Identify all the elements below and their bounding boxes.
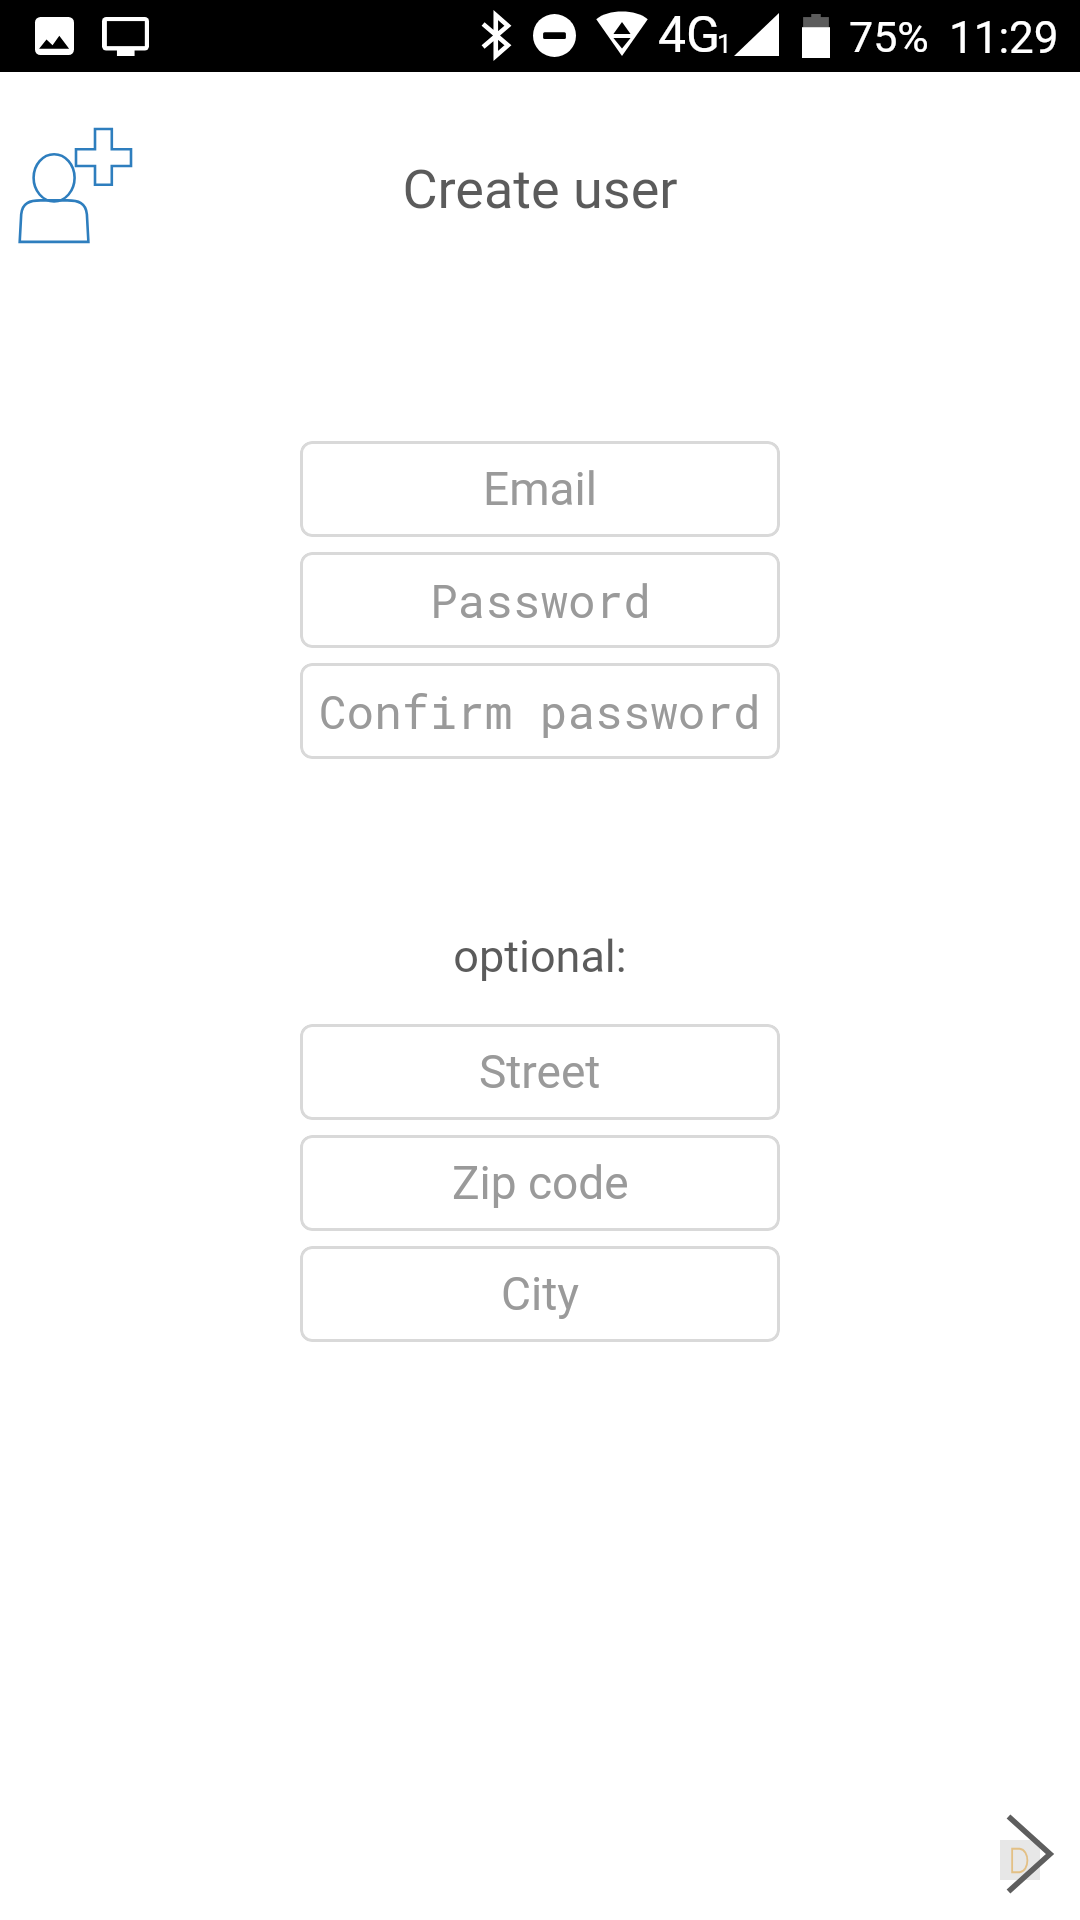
staticText: Zip code bbox=[452, 1156, 629, 1210]
staticText: Confirm password bbox=[319, 681, 761, 742]
button[interactable]: Zip code bbox=[300, 1135, 780, 1231]
staticText: 4G bbox=[658, 6, 721, 65]
button[interactable]: Add user bbox=[18, 128, 132, 244]
staticText: Email bbox=[483, 462, 597, 516]
staticText: optional: bbox=[0, 930, 1080, 983]
staticText: 75% bbox=[849, 12, 929, 62]
button[interactable]: Email bbox=[300, 441, 780, 537]
button[interactable]: Password bbox=[300, 552, 780, 648]
button[interactable]: Confirm password bbox=[300, 663, 780, 759]
staticText: 11:29 bbox=[949, 12, 1059, 64]
staticText: City bbox=[501, 1267, 579, 1321]
staticText: Create user bbox=[0, 158, 1080, 221]
button[interactable]: Street bbox=[300, 1024, 780, 1120]
staticText: 1 bbox=[717, 29, 732, 59]
button[interactable]: Next bbox=[975, 1790, 1080, 1920]
staticText: Password bbox=[430, 570, 651, 631]
button[interactable]: City bbox=[300, 1246, 780, 1342]
staticText: Street bbox=[479, 1045, 601, 1099]
